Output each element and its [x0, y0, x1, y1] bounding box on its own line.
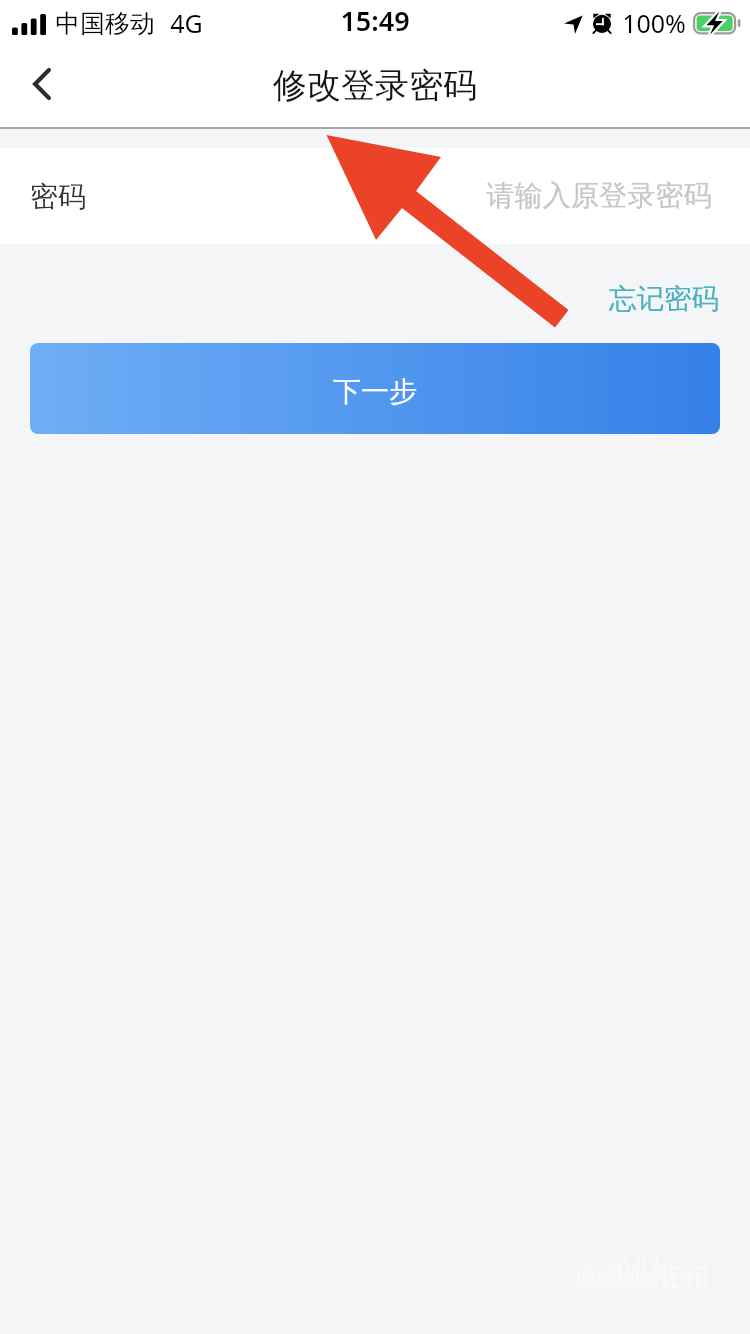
staticText: 密码: [30, 179, 86, 214]
button[interactable]: Back: [0, 45, 84, 129]
staticText: 下一步: [333, 374, 417, 409]
button[interactable]: 下一步: [30, 343, 720, 434]
staticText: 15:49: [340, 2, 410, 39]
staticText: 修改登录密码: [273, 64, 477, 107]
staticText: 4G: [170, 6, 203, 40]
staticText: 忘记密码: [609, 282, 719, 317]
button[interactable]: 密码: [0, 148, 750, 244]
staticText: 请输入原登录密码: [486, 178, 712, 214]
button[interactable]: 忘记密码: [573, 244, 750, 343]
staticText: 中国移动: [55, 8, 155, 39]
staticText: 100%: [622, 6, 686, 40]
